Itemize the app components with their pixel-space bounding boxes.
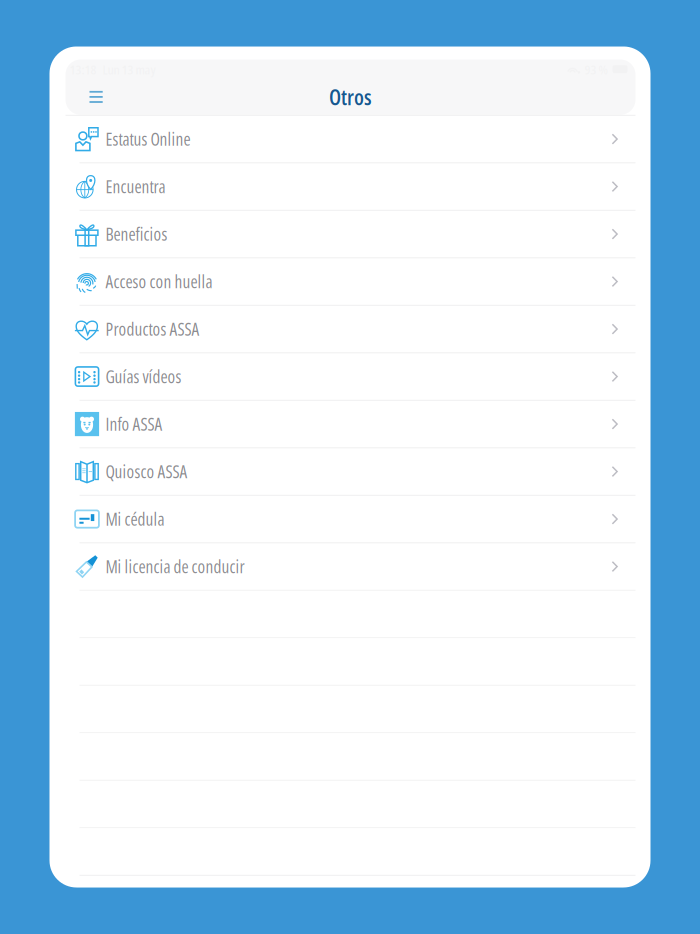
button[interactable]: Guías vídeos — [65, 353, 635, 401]
button[interactable]: Estatus Online — [65, 116, 635, 163]
button[interactable]: Acceso con huella — [65, 258, 635, 306]
button[interactable]: Quiosco ASSA — [65, 448, 635, 496]
staticText: Mi cédula — [105, 507, 164, 531]
staticText: Beneficios — [105, 222, 167, 246]
staticText: Mi licencia de conducir — [105, 555, 244, 578]
staticText: Productos ASSA — [105, 317, 199, 341]
button[interactable]: Mi cédula — [65, 496, 635, 543]
button[interactable]: Mi licencia de conducir — [65, 543, 635, 591]
staticText: Guías vídeos — [105, 365, 181, 388]
button[interactable]: Encuentra — [65, 163, 635, 211]
staticText: Encuentra — [105, 175, 165, 198]
staticText: Estatus Online — [105, 127, 190, 151]
button[interactable]: Info ASSA — [65, 401, 635, 448]
staticText: Acceso con huella — [105, 270, 212, 293]
button[interactable]: Beneficios — [65, 211, 635, 258]
button[interactable]: Menu — [79, 81, 113, 113]
button[interactable]: Productos ASSA — [65, 306, 635, 353]
staticText: Quiosco ASSA — [105, 460, 187, 483]
staticText: Info ASSA — [105, 412, 162, 436]
staticText: Otros — [329, 82, 372, 111]
